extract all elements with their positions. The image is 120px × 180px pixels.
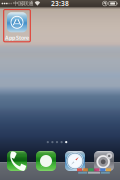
staticText: App Store xyxy=(5,34,29,41)
button[interactable]: Messages xyxy=(36,151,56,171)
staticText: 中国联通 xyxy=(13,0,33,7)
button[interactable]: Settings xyxy=(94,151,114,171)
button[interactable]: App Store xyxy=(4,12,30,41)
button[interactable]: Phone xyxy=(7,151,27,171)
staticText: 23:38 xyxy=(51,0,69,8)
button[interactable]: Safari xyxy=(65,151,85,171)
